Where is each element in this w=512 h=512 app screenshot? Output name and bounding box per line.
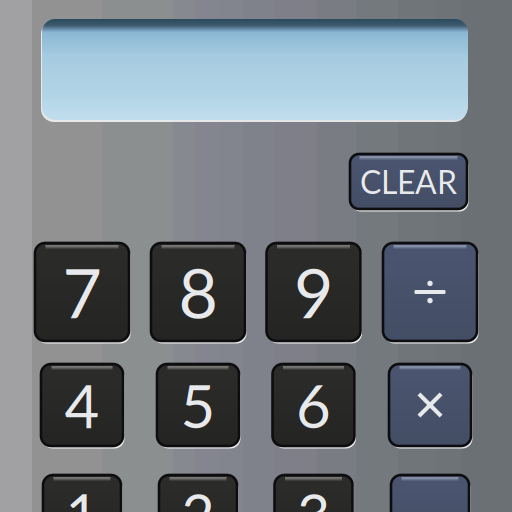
button[interactable]: Clear — [347, 151, 469, 212]
staticText: 6 — [296, 369, 331, 441]
button[interactable]: 6 — [270, 361, 357, 449]
button[interactable]: 7 — [32, 240, 131, 344]
staticText: 2 — [181, 480, 214, 512]
button[interactable]: 5 — [154, 361, 241, 449]
staticText: CLEAR — [360, 162, 457, 201]
button[interactable]: 1 — [40, 472, 123, 512]
button[interactable]: 3 — [272, 472, 355, 512]
button[interactable]: 2 — [156, 472, 239, 512]
staticText: 5 — [180, 369, 215, 441]
staticText: 4 — [64, 369, 99, 441]
button[interactable]: 8 — [148, 240, 247, 344]
staticText: 7 — [62, 251, 101, 333]
button[interactable]: Subtract — [388, 472, 471, 512]
staticText: 9 — [294, 251, 333, 333]
staticText: 8 — [178, 251, 217, 333]
staticText: 1 — [65, 480, 98, 512]
button[interactable]: 4 — [38, 361, 125, 449]
button[interactable]: Multiply — [386, 361, 473, 449]
button[interactable]: Divide — [380, 240, 479, 344]
button[interactable]: 9 — [264, 240, 363, 344]
staticText: 3 — [297, 480, 330, 512]
